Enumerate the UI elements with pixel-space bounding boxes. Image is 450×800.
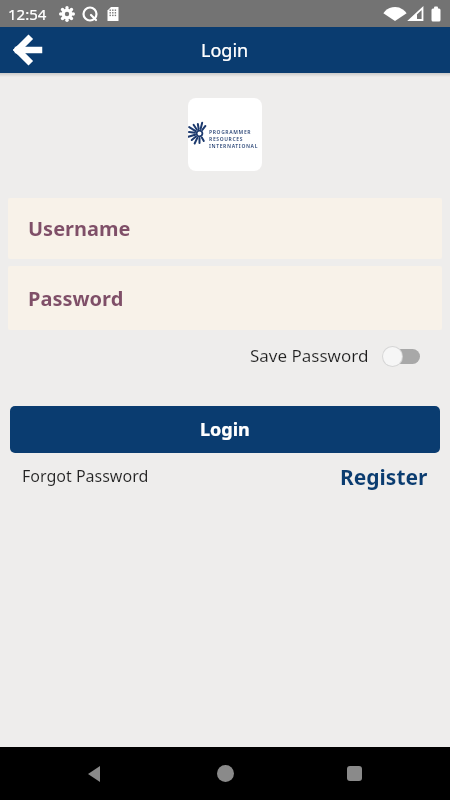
staticText: PROGRAMMER RESOURCES INTERNATIONAL: [209, 129, 259, 150]
button[interactable]: Password: [8, 266, 442, 330]
button[interactable]: [347, 766, 362, 781]
staticText: Login: [200, 417, 250, 442]
staticText: 12:54: [8, 4, 47, 24]
button[interactable]: [382, 345, 420, 367]
button[interactable]: [8, 30, 48, 70]
staticText: Login: [201, 38, 249, 63]
button[interactable]: Forgot Password: [22, 465, 149, 487]
button[interactable]: [86, 765, 104, 783]
button[interactable]: [217, 765, 234, 782]
staticText: Save Password: [250, 344, 369, 367]
button[interactable]: Username: [8, 198, 442, 259]
staticText: Password: [28, 285, 124, 312]
staticText: Username: [28, 215, 131, 242]
button[interactable]: Login: [10, 406, 440, 453]
button[interactable]: Register: [340, 463, 428, 492]
